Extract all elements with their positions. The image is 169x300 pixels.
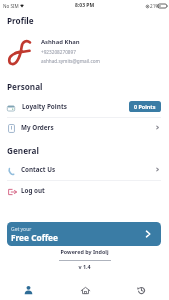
staticText: Ashhad Khan	[41, 38, 80, 46]
button[interactable]: Home	[76, 281, 94, 299]
staticText: Powered by Indolj	[0, 248, 169, 255]
button[interactable]: Order history	[132, 281, 150, 299]
button[interactable]: Loyalty Points	[0, 97, 169, 115]
button[interactable]: Profile	[19, 281, 37, 299]
staticText: ashhad.symits@gmail.com	[41, 58, 100, 64]
staticText: Profile	[7, 15, 34, 26]
staticText: Get your	[11, 226, 32, 233]
button[interactable]: Get your	[7, 222, 161, 246]
staticText: 8:03 PM	[75, 2, 95, 9]
button[interactable]: Contact Us	[0, 160, 169, 178]
staticText: +923208270897	[41, 49, 76, 55]
staticText: Log out	[21, 186, 45, 195]
button[interactable]: Log out	[0, 181, 169, 199]
staticText: My Orders	[21, 123, 54, 132]
staticText: General	[7, 145, 39, 156]
staticText: 21%	[150, 3, 160, 9]
staticText: Contact Us	[21, 165, 56, 174]
staticText: v 1.4	[0, 263, 169, 270]
staticText: Personal	[7, 81, 43, 92]
staticText: Free Coffee	[11, 232, 58, 243]
staticText: 0 Points	[134, 103, 156, 110]
button[interactable]: Ashhad Khan	[0, 33, 169, 71]
staticText: No SIM	[3, 3, 19, 9]
staticText: Loyalty Points	[22, 102, 67, 111]
button[interactable]: My Orders	[0, 118, 169, 136]
